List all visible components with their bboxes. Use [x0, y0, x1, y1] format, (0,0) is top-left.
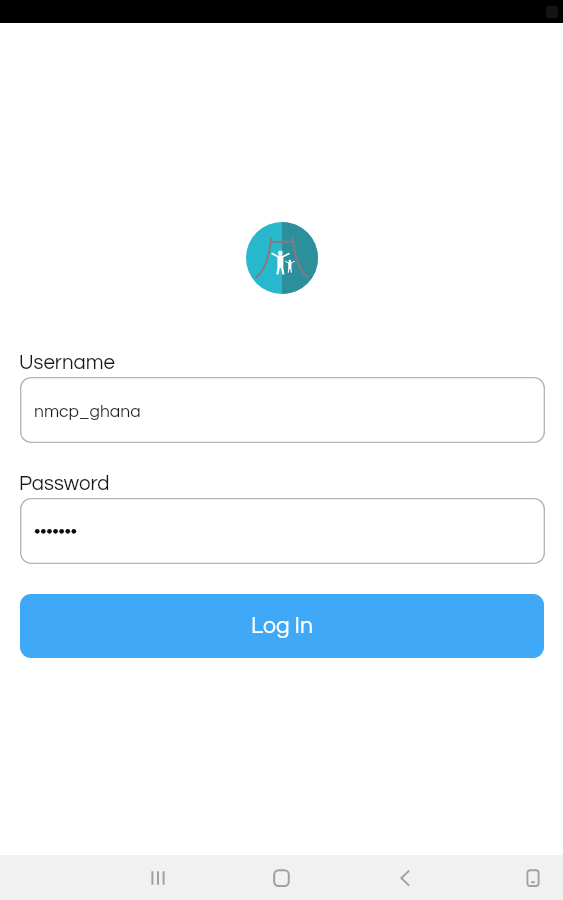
- button[interactable]: Log In: [20, 594, 544, 658]
- staticText: Log In: [251, 614, 314, 638]
- staticText: Username: [19, 352, 115, 373]
- button[interactable]: Home: [220, 855, 343, 900]
- staticText: Password: [19, 473, 110, 494]
- staticText: nmcp_ghana: [34, 403, 141, 421]
- button[interactable]: Keyboard: [467, 855, 563, 900]
- button[interactable]: nmcp_ghana: [20, 377, 545, 443]
- button[interactable]: Back: [343, 855, 467, 900]
- button[interactable]: Recent apps: [96, 855, 220, 900]
- button[interactable]: [20, 498, 545, 564]
